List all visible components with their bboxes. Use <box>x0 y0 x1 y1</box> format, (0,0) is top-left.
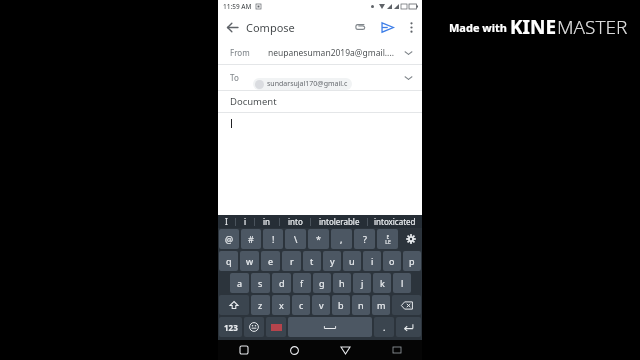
button[interactable]: @ <box>219 229 239 249</box>
button[interactable]: g <box>313 273 331 293</box>
button[interactable]: Settings <box>400 229 421 249</box>
staticText: w <box>246 255 254 267</box>
button[interactable]: s <box>251 273 270 293</box>
staticText: y <box>330 255 335 267</box>
button[interactable]: v <box>312 295 330 315</box>
button[interactable]: * <box>308 229 329 249</box>
button[interactable]: . <box>374 317 394 337</box>
button[interactable]: c <box>292 295 310 315</box>
button[interactable]: Emoji label <box>377 229 398 249</box>
staticText: u <box>349 255 355 267</box>
button[interactable]: Document <box>218 91 422 112</box>
staticText: sundarsujal170@gmail.c <box>267 79 348 89</box>
staticText: E LE <box>385 234 391 245</box>
button[interactable]: o <box>383 251 401 271</box>
staticText: k <box>380 277 385 289</box>
staticText: e <box>268 255 274 267</box>
staticText: # <box>248 233 254 245</box>
staticText: Document <box>230 95 277 108</box>
button[interactable]: ? <box>354 229 375 249</box>
staticText: \ <box>294 233 298 245</box>
button[interactable]: p <box>403 251 421 271</box>
button[interactable]: j <box>353 273 371 293</box>
button[interactable]: , <box>331 229 352 249</box>
button[interactable]: x <box>272 295 290 315</box>
button[interactable]: b <box>332 295 350 315</box>
button[interactable]: z <box>251 295 270 315</box>
button[interactable]: intolerable <box>311 215 367 228</box>
button[interactable]: l <box>393 273 411 293</box>
staticText: h <box>339 277 345 289</box>
staticText: i <box>371 255 374 267</box>
button[interactable]: w <box>240 251 259 271</box>
staticText: s <box>258 277 263 289</box>
button[interactable]: in <box>255 215 279 228</box>
staticText: neupanesuman2019a@gmail.... <box>268 47 394 59</box>
staticText: x <box>279 299 284 311</box>
button[interactable]: Back <box>320 340 371 360</box>
staticText: d <box>279 277 285 289</box>
button[interactable]: intoxicated <box>368 215 422 228</box>
button[interactable]: Shift <box>219 295 249 315</box>
button[interactable]: Recents <box>218 340 269 360</box>
staticText: KINE <box>510 14 557 40</box>
button[interactable]: Hide keyboard <box>371 340 422 360</box>
staticText: ! <box>272 233 275 245</box>
staticText: * <box>316 233 321 245</box>
staticText: into <box>288 216 303 227</box>
staticText: p <box>409 255 415 267</box>
button[interactable]: t <box>303 251 321 271</box>
staticText: t <box>310 255 314 267</box>
staticText: g <box>319 277 325 289</box>
button[interactable]: Home <box>269 340 320 360</box>
button[interactable]: Backspace <box>392 295 421 315</box>
staticText: j <box>361 277 364 289</box>
button[interactable] <box>218 113 422 215</box>
staticText: in <box>263 216 271 227</box>
button[interactable]: a <box>230 273 249 293</box>
staticText: m <box>377 299 386 311</box>
staticText: l <box>401 277 404 289</box>
staticText: r <box>290 255 294 267</box>
button[interactable]: To <box>218 65 422 90</box>
button[interactable]: \ <box>285 229 306 249</box>
button[interactable]: Language <box>266 317 286 337</box>
button[interactable]: q <box>219 251 238 271</box>
button[interactable]: d <box>272 273 291 293</box>
staticText: ? <box>363 233 367 245</box>
button[interactable]: Send <box>374 14 400 40</box>
button[interactable]: n <box>352 295 370 315</box>
staticText: MASTER <box>557 14 628 40</box>
staticText: i <box>244 216 247 227</box>
button[interactable]: # <box>241 229 261 249</box>
staticText: 11:59 AM <box>223 2 252 11</box>
staticText: q <box>226 255 232 267</box>
button[interactable]: Space <box>288 317 372 337</box>
button[interactable]: i <box>236 215 254 228</box>
button[interactable]: Emoji <box>244 317 264 337</box>
button[interactable]: e <box>261 251 280 271</box>
button[interactable]: r <box>282 251 301 271</box>
staticText: v <box>319 299 324 311</box>
button[interactable]: m <box>372 295 390 315</box>
staticText: z <box>258 299 263 311</box>
button[interactable]: I <box>218 215 235 228</box>
button[interactable]: Back <box>218 13 246 41</box>
button[interactable]: Enter <box>396 317 421 337</box>
button[interactable]: k <box>373 273 391 293</box>
staticText: From <box>230 47 250 58</box>
button[interactable]: More options <box>400 16 422 38</box>
button[interactable]: into <box>280 215 310 228</box>
button[interactable]: f <box>293 273 311 293</box>
staticText: intoxicated <box>374 216 416 227</box>
staticText: n <box>358 299 364 311</box>
button[interactable]: From <box>218 41 422 64</box>
button[interactable]: Numbers <box>219 317 242 337</box>
button[interactable]: i <box>363 251 381 271</box>
button[interactable]: ! <box>263 229 283 249</box>
button[interactable]: h <box>333 273 351 293</box>
button[interactable]: u <box>343 251 361 271</box>
button[interactable]: Attach file <box>348 14 374 40</box>
button[interactable]: y <box>323 251 341 271</box>
staticText: a <box>237 277 243 289</box>
